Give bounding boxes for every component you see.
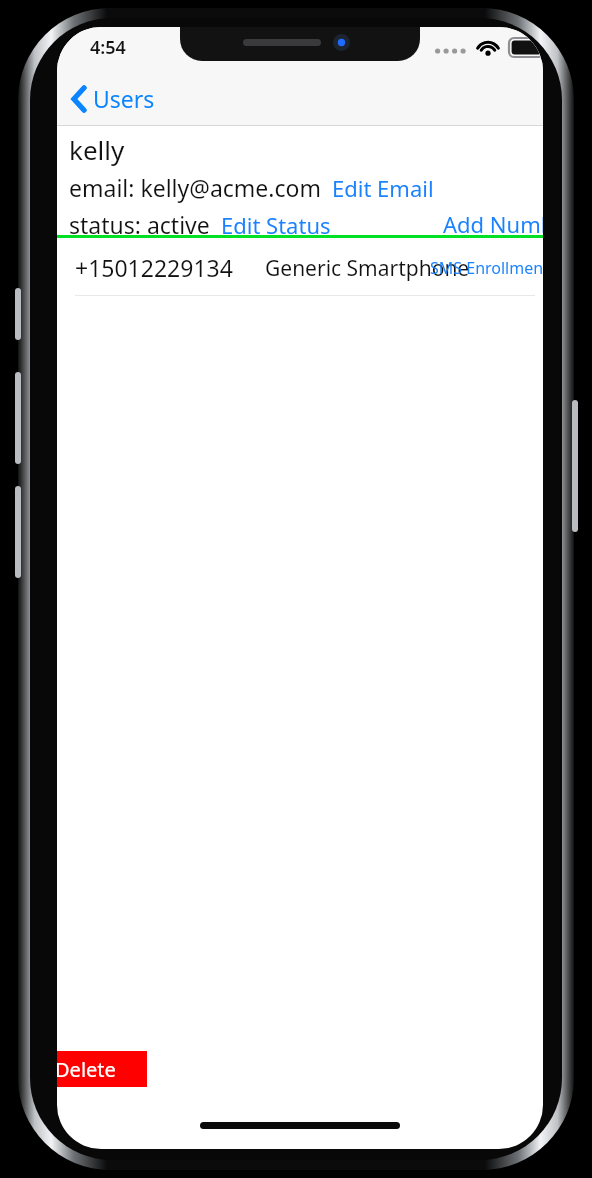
button[interactable]: Users bbox=[65, 74, 155, 123]
staticText: Edit Status bbox=[221, 210, 331, 240]
staticText: status: active bbox=[69, 209, 210, 240]
button[interactable]: +15012229134 bbox=[57, 238, 543, 295]
staticText: Delete User bbox=[57, 1056, 149, 1083]
staticText: Generic Smartphone bbox=[265, 254, 470, 283]
staticText: +15012229134 bbox=[75, 252, 233, 283]
staticText: email: kelly@acme.com bbox=[69, 172, 321, 203]
staticText: SMS Enrollment bbox=[430, 257, 543, 279]
button[interactable]: Add Number bbox=[443, 209, 543, 239]
staticText: Users bbox=[93, 83, 155, 114]
staticText: Edit Email bbox=[332, 173, 434, 203]
button[interactable]: Edit Status bbox=[221, 210, 331, 240]
staticText: 4:54 bbox=[90, 35, 126, 60]
button[interactable]: Edit Email bbox=[332, 173, 434, 203]
button[interactable]: Delete User bbox=[57, 1051, 147, 1087]
staticText: Add Number bbox=[443, 209, 543, 239]
button[interactable]: kelly bbox=[69, 132, 125, 167]
